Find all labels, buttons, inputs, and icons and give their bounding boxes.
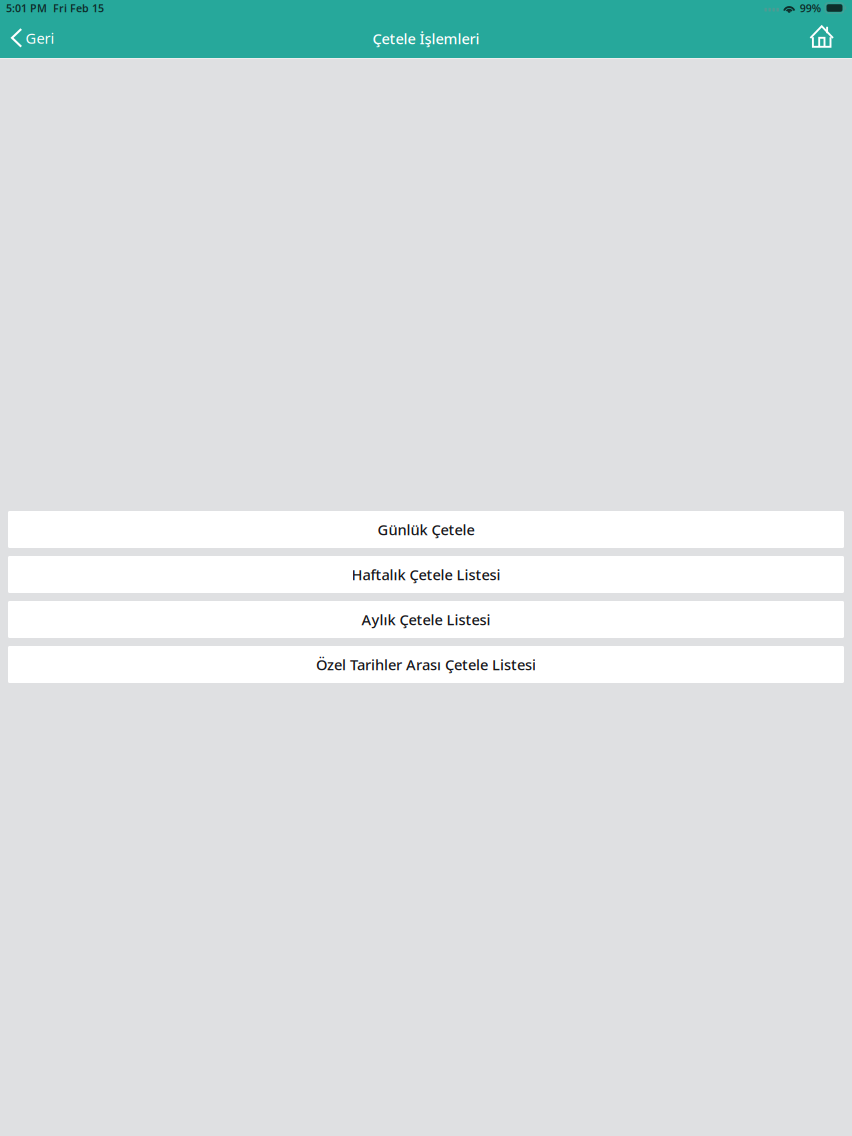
staticText: Haftalık Çetele Listesi <box>351 565 500 584</box>
staticText: Geri <box>25 28 54 48</box>
staticText: 99% <box>800 1 821 15</box>
button[interactable]: Home <box>800 20 852 53</box>
staticText: Fri Feb 15 <box>53 1 104 15</box>
staticText: Çetele İşlemleri <box>372 29 479 48</box>
staticText: 5:01 PM <box>6 1 47 15</box>
button[interactable]: Haftalık Çetele Listesi <box>8 556 844 593</box>
staticText: Özel Tarihler Arası Çetele Listesi <box>316 655 536 674</box>
button[interactable]: Günlük Çetele <box>8 511 844 548</box>
button[interactable]: Geri <box>0 20 62 53</box>
button[interactable]: Aylık Çetele Listesi <box>8 601 844 638</box>
staticText: Günlük Çetele <box>377 520 474 539</box>
button[interactable]: Özel Tarihler Arası Çetele Listesi <box>8 646 844 683</box>
staticText: Aylık Çetele Listesi <box>361 610 490 629</box>
